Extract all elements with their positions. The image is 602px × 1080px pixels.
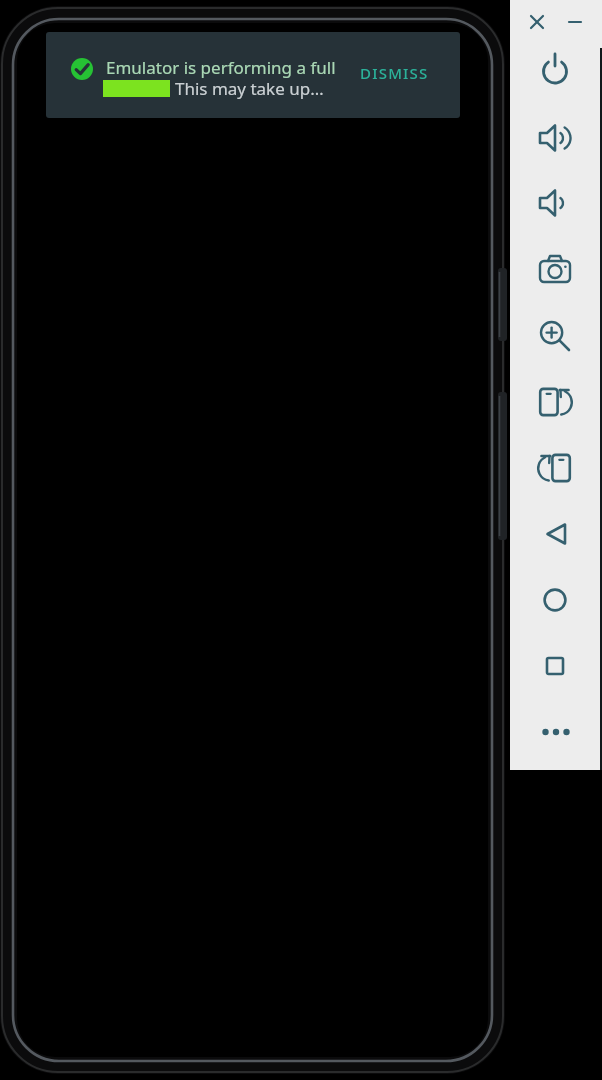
button[interactable] [533, 445, 577, 489]
button[interactable] [533, 116, 577, 160]
button[interactable] [533, 313, 577, 357]
staticText: This may take up… [175, 77, 324, 100]
button[interactable] [533, 644, 577, 688]
button[interactable] [523, 8, 551, 36]
button[interactable] [561, 8, 589, 36]
button[interactable] [533, 248, 577, 292]
button[interactable] [533, 49, 577, 93]
button[interactable]: DISMISS [360, 63, 429, 83]
staticText: Emulator is performing a full [106, 56, 336, 79]
button[interactable] [533, 379, 577, 423]
button[interactable] [534, 710, 578, 754]
button[interactable] [534, 512, 578, 556]
button[interactable] [529, 181, 573, 225]
button[interactable] [533, 578, 577, 622]
